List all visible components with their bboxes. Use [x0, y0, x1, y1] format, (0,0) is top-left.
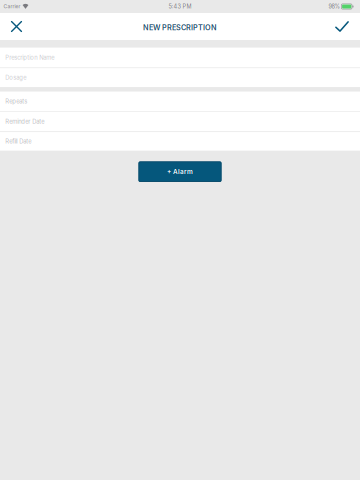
- staticText: Prescription Name: [5, 54, 54, 61]
- staticText: + Alarm: [167, 168, 193, 175]
- button[interactable]: Reminder Date: [0, 112, 360, 131]
- staticText: 5:43 PM: [168, 3, 191, 10]
- staticText: Refill Date: [5, 138, 31, 145]
- button[interactable]: Prescription Name: [0, 48, 360, 68]
- staticText: Carrier: [3, 3, 20, 9]
- button[interactable]: + Alarm: [138, 161, 221, 182]
- staticText: Dosage: [5, 74, 26, 81]
- staticText: Reminder Date: [5, 118, 44, 125]
- staticText: NEW PRESCRIPTION: [143, 23, 217, 32]
- button[interactable]: Close: [1, 13, 31, 40]
- staticText: 98%: [329, 3, 340, 10]
- button[interactable]: Save: [327, 13, 357, 40]
- staticText: Repeats: [5, 98, 27, 105]
- button[interactable]: Repeats: [0, 92, 360, 111]
- button[interactable]: Refill Date: [0, 132, 360, 151]
